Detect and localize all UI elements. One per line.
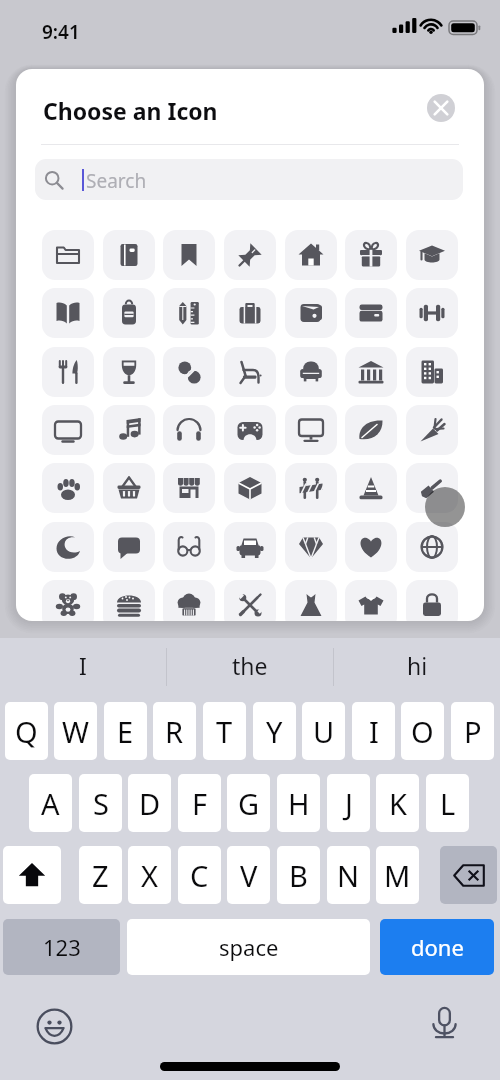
button[interactable]: M bbox=[376, 846, 419, 904]
button[interactable]: Carrot bbox=[406, 405, 458, 455]
button[interactable]: C bbox=[178, 846, 221, 904]
button[interactable]: Pencil and ruler bbox=[163, 288, 215, 338]
button[interactable]: Game controller bbox=[224, 405, 276, 455]
button[interactable]: Barrier bbox=[285, 463, 337, 513]
button[interactable]: Heart bbox=[345, 522, 397, 572]
button[interactable]: Box bbox=[224, 463, 276, 513]
staticText: X bbox=[141, 856, 158, 895]
button[interactable]: Chat bbox=[103, 522, 155, 572]
button[interactable]: Burger bbox=[103, 580, 155, 621]
button[interactable]: 123 bbox=[3, 919, 120, 975]
button[interactable]: Graduation bbox=[406, 230, 458, 280]
button[interactable]: R bbox=[153, 702, 196, 760]
button[interactable]: B bbox=[277, 846, 320, 904]
button[interactable]: K bbox=[376, 774, 419, 832]
button[interactable]: V bbox=[227, 846, 270, 904]
staticText: S bbox=[93, 784, 109, 823]
staticText: R bbox=[165, 712, 184, 751]
button[interactable]: Briefcase bbox=[224, 288, 276, 338]
staticText: J bbox=[345, 784, 353, 823]
button[interactable]: done bbox=[380, 919, 494, 975]
button[interactable]: Dress bbox=[285, 580, 337, 621]
button[interactable]: Glasses bbox=[163, 522, 215, 572]
button[interactable]: Building bbox=[406, 347, 458, 397]
staticText: Choose an Icon bbox=[43, 95, 218, 126]
button[interactable]: P bbox=[451, 702, 494, 760]
staticText: K bbox=[389, 784, 407, 823]
button[interactable]: Cone bbox=[345, 463, 397, 513]
button[interactable]: Credit card bbox=[345, 288, 397, 338]
button[interactable]: Globe bbox=[406, 522, 458, 572]
button[interactable]: X bbox=[128, 846, 171, 904]
button[interactable]: L bbox=[426, 774, 469, 832]
button[interactable]: T-shirt bbox=[345, 580, 397, 621]
staticText: done bbox=[411, 932, 464, 962]
button[interactable]: Shift bbox=[3, 846, 61, 904]
button[interactable]: Armchair bbox=[285, 347, 337, 397]
button[interactable]: Close bbox=[427, 94, 455, 122]
button[interactable]: N bbox=[327, 846, 370, 904]
button[interactable]: Chef hat bbox=[163, 580, 215, 621]
button[interactable]: D bbox=[128, 774, 171, 832]
staticText: T bbox=[216, 712, 233, 751]
button[interactable]: House bbox=[285, 230, 337, 280]
button[interactable]: space bbox=[127, 919, 370, 975]
button[interactable]: Pin bbox=[224, 230, 276, 280]
button[interactable]: T bbox=[203, 702, 246, 760]
button[interactable]: Music bbox=[103, 405, 155, 455]
button[interactable]: Teddy bear bbox=[42, 580, 94, 621]
staticText: H bbox=[288, 784, 310, 823]
button[interactable]: Wine bbox=[103, 347, 155, 397]
button[interactable]: Emoji bbox=[36, 1008, 73, 1045]
button[interactable]: Dumbbell bbox=[406, 288, 458, 338]
button[interactable]: Z bbox=[79, 846, 122, 904]
button[interactable]: U bbox=[302, 702, 345, 760]
button[interactable]: I bbox=[0, 638, 166, 692]
button[interactable]: H bbox=[277, 774, 320, 832]
button[interactable]: J bbox=[327, 774, 370, 832]
button[interactable]: Wallet bbox=[285, 288, 337, 338]
button[interactable]: E bbox=[104, 702, 147, 760]
button[interactable]: Y bbox=[253, 702, 296, 760]
button[interactable]: Basket bbox=[103, 463, 155, 513]
staticText: 9:41 bbox=[42, 19, 80, 45]
button[interactable]: Delete bbox=[440, 846, 497, 904]
button[interactable]: Hammer bbox=[406, 463, 458, 513]
button[interactable]: G bbox=[227, 774, 270, 832]
button[interactable]: Bank bbox=[345, 347, 397, 397]
button[interactable]: Headphones bbox=[163, 405, 215, 455]
button[interactable]: I bbox=[352, 702, 395, 760]
button[interactable]: Car bbox=[224, 522, 276, 572]
button[interactable]: Backpack bbox=[103, 288, 155, 338]
button[interactable]: Cutlery bbox=[42, 347, 94, 397]
button[interactable]: Search bbox=[35, 159, 463, 200]
button[interactable]: Folder bbox=[42, 230, 94, 280]
staticText: I bbox=[79, 650, 87, 681]
button[interactable]: Lounge chair bbox=[224, 347, 276, 397]
button[interactable]: hi bbox=[334, 638, 500, 692]
button[interactable]: S bbox=[79, 774, 122, 832]
staticText: M bbox=[384, 856, 411, 895]
button[interactable]: Moon bbox=[42, 522, 94, 572]
button[interactable]: Dictate bbox=[426, 1005, 463, 1042]
button[interactable]: Handbag bbox=[406, 580, 458, 621]
button[interactable]: Q bbox=[5, 702, 48, 760]
button[interactable]: Computer bbox=[285, 405, 337, 455]
button[interactable]: Store bbox=[163, 463, 215, 513]
button[interactable]: Diamond bbox=[285, 522, 337, 572]
button[interactable]: Notebook bbox=[103, 230, 155, 280]
button[interactable]: O bbox=[401, 702, 444, 760]
button[interactable]: Book bbox=[42, 288, 94, 338]
button[interactable]: Television bbox=[42, 405, 94, 455]
button[interactable]: Leaf bbox=[345, 405, 397, 455]
button[interactable]: Pills bbox=[163, 347, 215, 397]
button[interactable]: A bbox=[29, 774, 72, 832]
button[interactable]: Bookmark bbox=[163, 230, 215, 280]
button[interactable]: the bbox=[167, 638, 333, 692]
button[interactable]: W bbox=[54, 702, 97, 760]
button[interactable]: F bbox=[178, 774, 221, 832]
button[interactable]: Gift bbox=[345, 230, 397, 280]
staticText: E bbox=[117, 712, 134, 751]
button[interactable]: Tools bbox=[224, 580, 276, 621]
button[interactable]: Paw bbox=[42, 463, 94, 513]
